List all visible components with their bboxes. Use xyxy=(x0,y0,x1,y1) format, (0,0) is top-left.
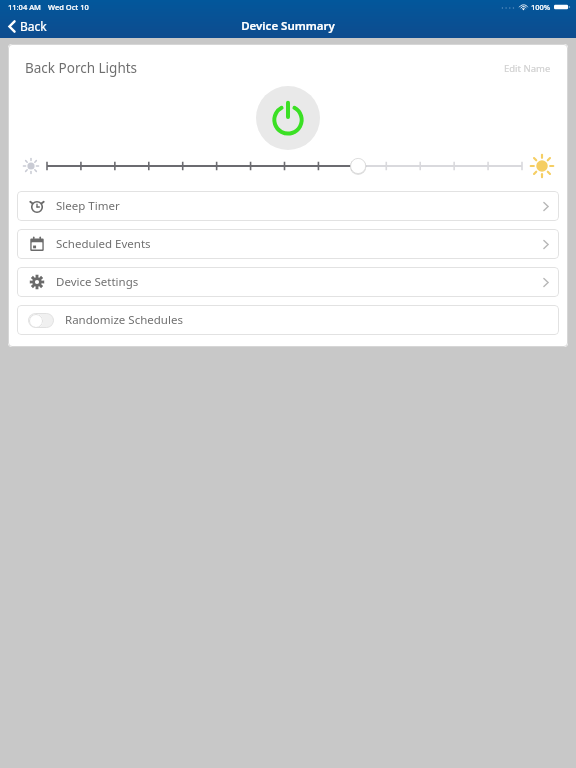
button[interactable]: Brightness xyxy=(47,153,522,179)
button[interactable]: Sleep Timer xyxy=(17,191,559,221)
staticText: Device Summary xyxy=(241,18,335,34)
staticText: 11:04 AM xyxy=(8,2,41,12)
staticText: Scheduled Events xyxy=(56,236,151,252)
staticText: Back xyxy=(20,18,47,34)
staticText: Back Porch Lights xyxy=(25,59,138,77)
staticText: Wed Oct 10 xyxy=(48,2,89,12)
button[interactable]: Power toggle xyxy=(256,86,320,150)
button[interactable]: Device Settings xyxy=(17,267,559,297)
button[interactable]: Scheduled Events xyxy=(17,229,559,259)
staticText: Randomize Schedules xyxy=(65,312,183,328)
button[interactable]: Randomize Schedules toggle xyxy=(28,313,54,328)
button[interactable]: Back xyxy=(0,15,59,37)
staticText: Device Settings xyxy=(56,274,139,290)
staticText: 100% xyxy=(531,2,551,12)
button[interactable]: Edit Name xyxy=(502,60,553,77)
staticText: Edit Name xyxy=(504,62,551,75)
staticText: Sleep Timer xyxy=(56,198,120,214)
